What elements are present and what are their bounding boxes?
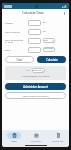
button[interactable] bbox=[28, 29, 41, 35]
button[interactable]: Administer Amount bbox=[5, 83, 66, 90]
staticText: Concentration: 0.0 mg/ml bbox=[22, 75, 50, 78]
staticText: Infusion Plan bbox=[52, 140, 64, 143]
staticText: kg bbox=[43, 21, 46, 24]
staticText: Drug Library bbox=[30, 140, 42, 143]
staticText: Doses bbox=[11, 140, 17, 143]
staticText: Clear bbox=[16, 58, 23, 62]
staticText: Administer Amount bbox=[23, 85, 48, 89]
staticText: Dose bbox=[5, 48, 27, 51]
button[interactable]: More options bbox=[62, 11, 67, 16]
staticText: ml bbox=[43, 30, 46, 33]
button[interactable] bbox=[28, 20, 41, 26]
button[interactable]: Clear bbox=[5, 56, 34, 63]
staticText: Fluid Amount bbox=[5, 30, 27, 33]
staticText: Weight bbox=[5, 21, 27, 24]
button[interactable]: Doses bbox=[2, 132, 25, 143]
button[interactable]: Infusion Plan bbox=[47, 132, 69, 143]
staticText: ml/hour bbox=[33, 69, 42, 72]
button[interactable] bbox=[28, 47, 41, 53]
staticText: mg bbox=[44, 39, 48, 42]
staticText: 0.0 bbox=[26, 69, 30, 72]
staticText: Save Infusion Protocol bbox=[22, 94, 49, 97]
staticText: Calculate Dose bbox=[22, 11, 44, 15]
staticText: Calculate bbox=[46, 58, 58, 62]
button[interactable]: Drug Library bbox=[25, 132, 47, 143]
button[interactable]: mcg/kg/min bbox=[43, 47, 55, 52]
staticText: Total Drug Dose in Fluid bbox=[5, 38, 27, 44]
button[interactable]: Save Infusion Protocol bbox=[5, 92, 66, 99]
staticText: mcg/kg/min bbox=[44, 47, 54, 52]
button[interactable]: mg bbox=[43, 38, 55, 43]
button[interactable] bbox=[28, 38, 41, 44]
button[interactable]: ml/hour bbox=[32, 68, 45, 73]
button[interactable]: Calculate bbox=[37, 56, 66, 63]
